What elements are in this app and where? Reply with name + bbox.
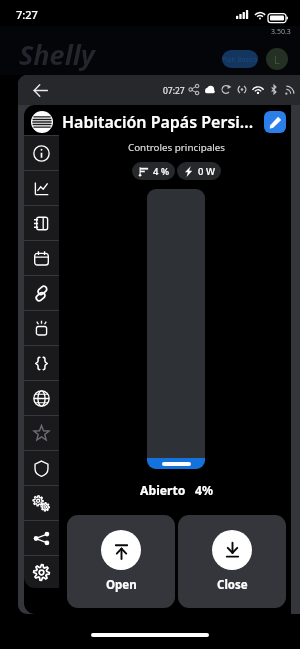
staticText: Open	[106, 577, 137, 593]
button[interactable]: Close	[178, 515, 286, 608]
button[interactable]: Open	[67, 515, 175, 608]
staticText: 7:27	[16, 7, 38, 22]
staticText: 0 W	[198, 165, 215, 178]
button[interactable]: Chart	[24, 171, 59, 205]
button[interactable]: Advanced	[24, 486, 59, 520]
button[interactable]: Security	[24, 451, 59, 485]
button[interactable]: Share	[24, 521, 59, 555]
staticText: L	[274, 52, 280, 67]
button[interactable]: Plan Básico	[222, 50, 258, 68]
button[interactable]: Web	[24, 381, 59, 415]
staticText: Plan Básico	[222, 55, 258, 64]
button[interactable]: Notes	[24, 206, 59, 240]
staticText: Abierto	[140, 482, 186, 499]
staticText: 3.50.3	[271, 27, 291, 37]
button[interactable]: Links	[24, 276, 59, 310]
staticText: Controles principales	[128, 141, 225, 154]
button[interactable]: 0 W	[177, 162, 221, 180]
button[interactable]: Schedule	[24, 241, 59, 275]
button[interactable]	[147, 189, 205, 469]
button[interactable]: Back	[28, 78, 52, 102]
staticText: Close	[217, 577, 248, 593]
button[interactable]: Edit	[264, 111, 286, 133]
button[interactable]: Info	[24, 136, 59, 170]
button[interactable]: Settings	[24, 556, 59, 588]
button[interactable]: Device	[24, 311, 59, 345]
button[interactable]: Favourites	[24, 416, 59, 450]
staticText: 07:27	[163, 85, 185, 97]
button[interactable]: 4 %	[132, 162, 175, 180]
button[interactable]: Account	[266, 48, 288, 70]
staticText: 4%	[195, 482, 213, 499]
staticText: Habitación Papás Persi...	[62, 111, 254, 133]
staticText: Shelly	[19, 36, 95, 73]
button[interactable]: Script	[24, 346, 59, 380]
staticText: 4 %	[153, 165, 169, 178]
